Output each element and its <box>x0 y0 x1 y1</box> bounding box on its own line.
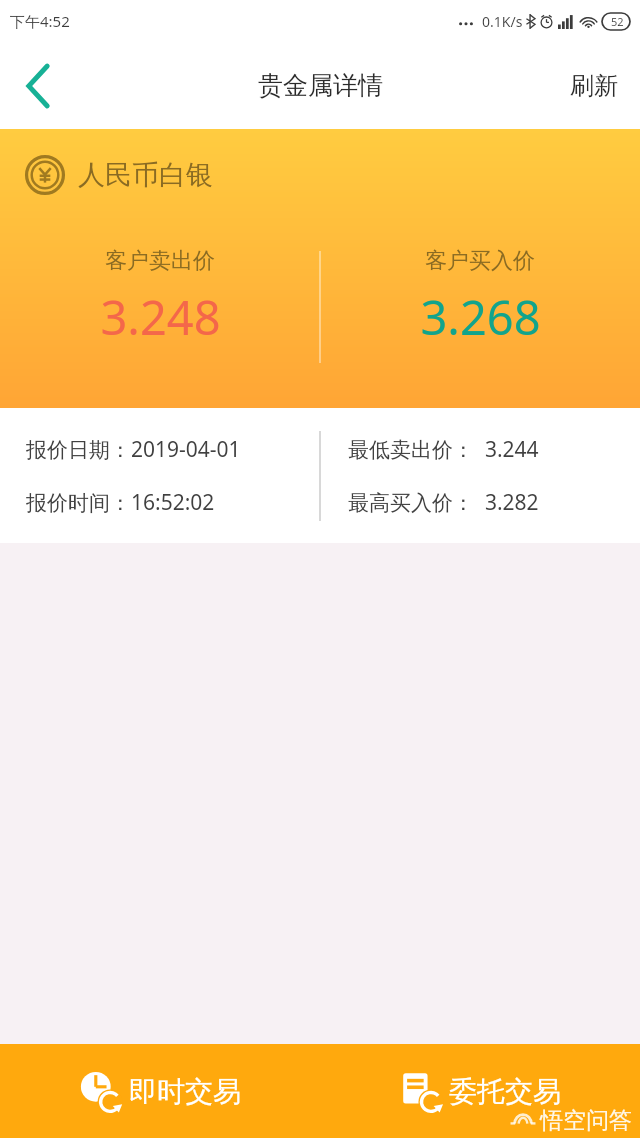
staticText: 下午4:52 <box>10 11 70 31</box>
staticText: 委托交易 <box>449 1074 561 1109</box>
staticText: 客户买入价 <box>425 247 535 275</box>
staticText: 0.1K/s <box>482 12 523 31</box>
staticText: 贵金属详情 <box>258 70 383 101</box>
button[interactable]: 返回 <box>0 42 76 129</box>
button[interactable]: 委托交易 <box>320 1044 640 1138</box>
staticText: 客户卖出价 <box>105 247 215 275</box>
staticText: 人民币白银 <box>78 158 213 192</box>
staticText: 最高买入价： 3.282 <box>348 488 539 517</box>
staticText: 报价时间：16:52:02 <box>26 488 215 517</box>
button[interactable]: 即时交易 <box>0 1044 320 1138</box>
staticText: 报价日期：2019-04-01 <box>26 435 241 464</box>
staticText: 最低卖出价： 3.244 <box>348 435 539 464</box>
staticText: 3.248 <box>100 285 221 349</box>
staticText: 悟空问答 <box>540 1106 632 1135</box>
button[interactable]: 刷新 <box>548 42 640 129</box>
staticText: 3.268 <box>420 285 541 349</box>
staticText: 即时交易 <box>129 1074 241 1109</box>
staticText: 52 <box>611 14 624 29</box>
staticText: 刷新 <box>570 71 618 101</box>
